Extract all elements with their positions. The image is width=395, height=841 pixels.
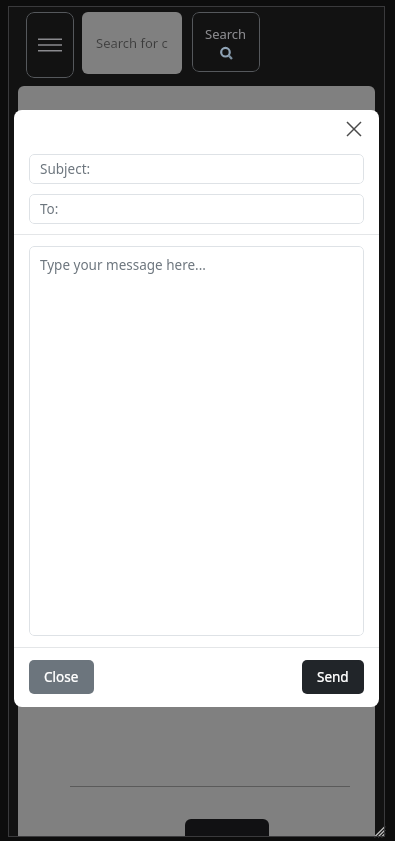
staticText: To: [40, 200, 59, 218]
button[interactable]: Close [29, 660, 94, 694]
button[interactable]: Action [185, 819, 269, 837]
staticText: Search [205, 25, 247, 43]
staticText: Type your message here... [40, 256, 206, 274]
button[interactable]: Search [192, 12, 260, 72]
button[interactable]: To: [29, 194, 364, 224]
button[interactable]: Subject: [29, 154, 364, 184]
staticText: Search for c [96, 34, 168, 52]
button[interactable]: Send [302, 660, 364, 694]
button[interactable]: Search for c [82, 12, 182, 74]
staticText: Subject: [40, 160, 91, 178]
staticText: Send [317, 668, 349, 686]
button[interactable]: Close [339, 114, 369, 144]
staticText: Close [44, 668, 79, 686]
button[interactable]: Menu [26, 12, 74, 78]
button[interactable]: Type your message here... [29, 246, 364, 636]
